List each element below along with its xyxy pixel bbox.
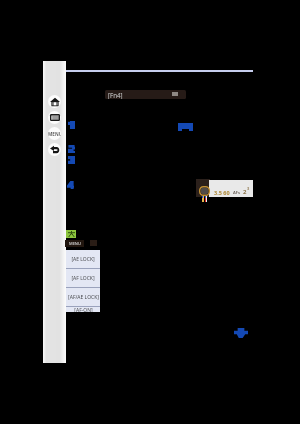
staticText: [AE LOCK] — [71, 256, 95, 263]
button[interactable]: [AE LOCK] — [66, 250, 100, 269]
staticText: [Fn4] — [108, 91, 123, 99]
button[interactable]: Custom setting — [66, 230, 76, 238]
button[interactable]: Contents — [48, 111, 61, 124]
button[interactable]: [AF-ON] — [66, 307, 100, 312]
button[interactable]: MENU — [65, 240, 84, 247]
button[interactable]: Fn4 function button — [105, 90, 186, 99]
staticText: 3 — [247, 186, 250, 191]
button[interactable]: [AF/AE LOCK] — [66, 288, 100, 307]
button[interactable]: Menu — [48, 127, 61, 140]
staticText: 3.5 60 — [214, 189, 230, 196]
staticText: [AF LOCK] — [71, 275, 95, 282]
staticText: AFs — [233, 190, 240, 195]
button[interactable]: Home — [48, 95, 61, 108]
staticText: MENU — [69, 241, 81, 246]
staticText: MENU — [48, 131, 61, 137]
button[interactable]: Back — [48, 143, 61, 156]
staticText: 2 — [243, 188, 247, 196]
button[interactable]: [AF LOCK] — [66, 269, 100, 288]
staticText: [AF/AE LOCK] — [68, 294, 99, 301]
staticText: [AF-ON] — [74, 307, 93, 312]
